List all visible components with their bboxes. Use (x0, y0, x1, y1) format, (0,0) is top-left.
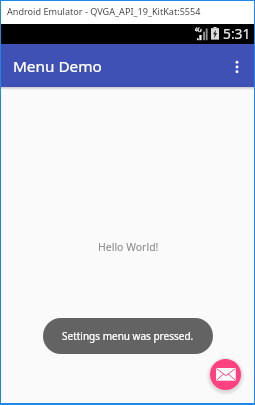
staticText: Android Emulator - QVGA_API_19_KitKat:55… (7, 5, 201, 17)
staticText: Hello World! (98, 240, 159, 254)
button[interactable]: More options (225, 55, 249, 79)
staticText: 5:31 (223, 24, 251, 43)
staticText: Settings menu was pressed. (62, 329, 194, 343)
staticText: Menu Demo (13, 56, 102, 77)
button[interactable]: Compose email (206, 355, 245, 394)
button[interactable]: Settings menu was pressed. (43, 318, 213, 354)
